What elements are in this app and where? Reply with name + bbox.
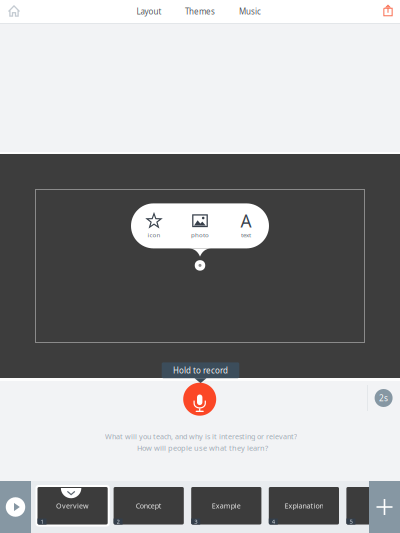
button[interactable]: icon	[131, 203, 177, 248]
button[interactable]	[346, 487, 400, 524]
button[interactable]: Example	[191, 487, 261, 524]
button[interactable]: Play	[0, 481, 31, 533]
button[interactable]: A	[223, 203, 269, 248]
button[interactable]: Add slide	[369, 481, 400, 533]
staticText: What will you teach, and why is it inter…	[105, 432, 297, 441]
staticText: Example	[212, 501, 241, 510]
staticText: Music	[239, 6, 261, 17]
button[interactable]: Share	[383, 4, 393, 17]
staticText: Layout	[136, 6, 161, 17]
staticText: 2	[117, 517, 120, 525]
staticText: 1	[40, 517, 43, 525]
button[interactable]: Overview	[35, 485, 110, 526]
staticText: How will people use what they learn?	[137, 443, 268, 453]
staticText: 5	[349, 517, 352, 525]
staticText: Overview	[56, 501, 89, 510]
staticText: 4	[272, 517, 275, 525]
button[interactable]: Layout	[136, 6, 161, 17]
button[interactable]: Hold to record	[183, 383, 216, 416]
button[interactable]: Explanation	[269, 487, 339, 524]
staticText: text	[241, 231, 251, 239]
button[interactable]: Home	[8, 5, 20, 17]
staticText: Concept	[136, 501, 162, 510]
staticText: 2s	[379, 392, 388, 404]
staticText: icon	[147, 231, 160, 239]
staticText: A	[240, 209, 251, 232]
staticText: photo	[191, 231, 209, 239]
staticText: Explanation	[284, 501, 323, 510]
staticText: Hold to record	[173, 365, 228, 376]
button[interactable]: Music	[239, 6, 261, 17]
button[interactable]: photo	[177, 203, 223, 248]
staticText: Themes	[185, 6, 215, 17]
button[interactable]: Concept	[114, 487, 184, 524]
staticText: 3	[194, 517, 197, 525]
button[interactable]: Clip duration 2 seconds	[375, 389, 393, 407]
button[interactable]: Themes	[185, 6, 215, 17]
